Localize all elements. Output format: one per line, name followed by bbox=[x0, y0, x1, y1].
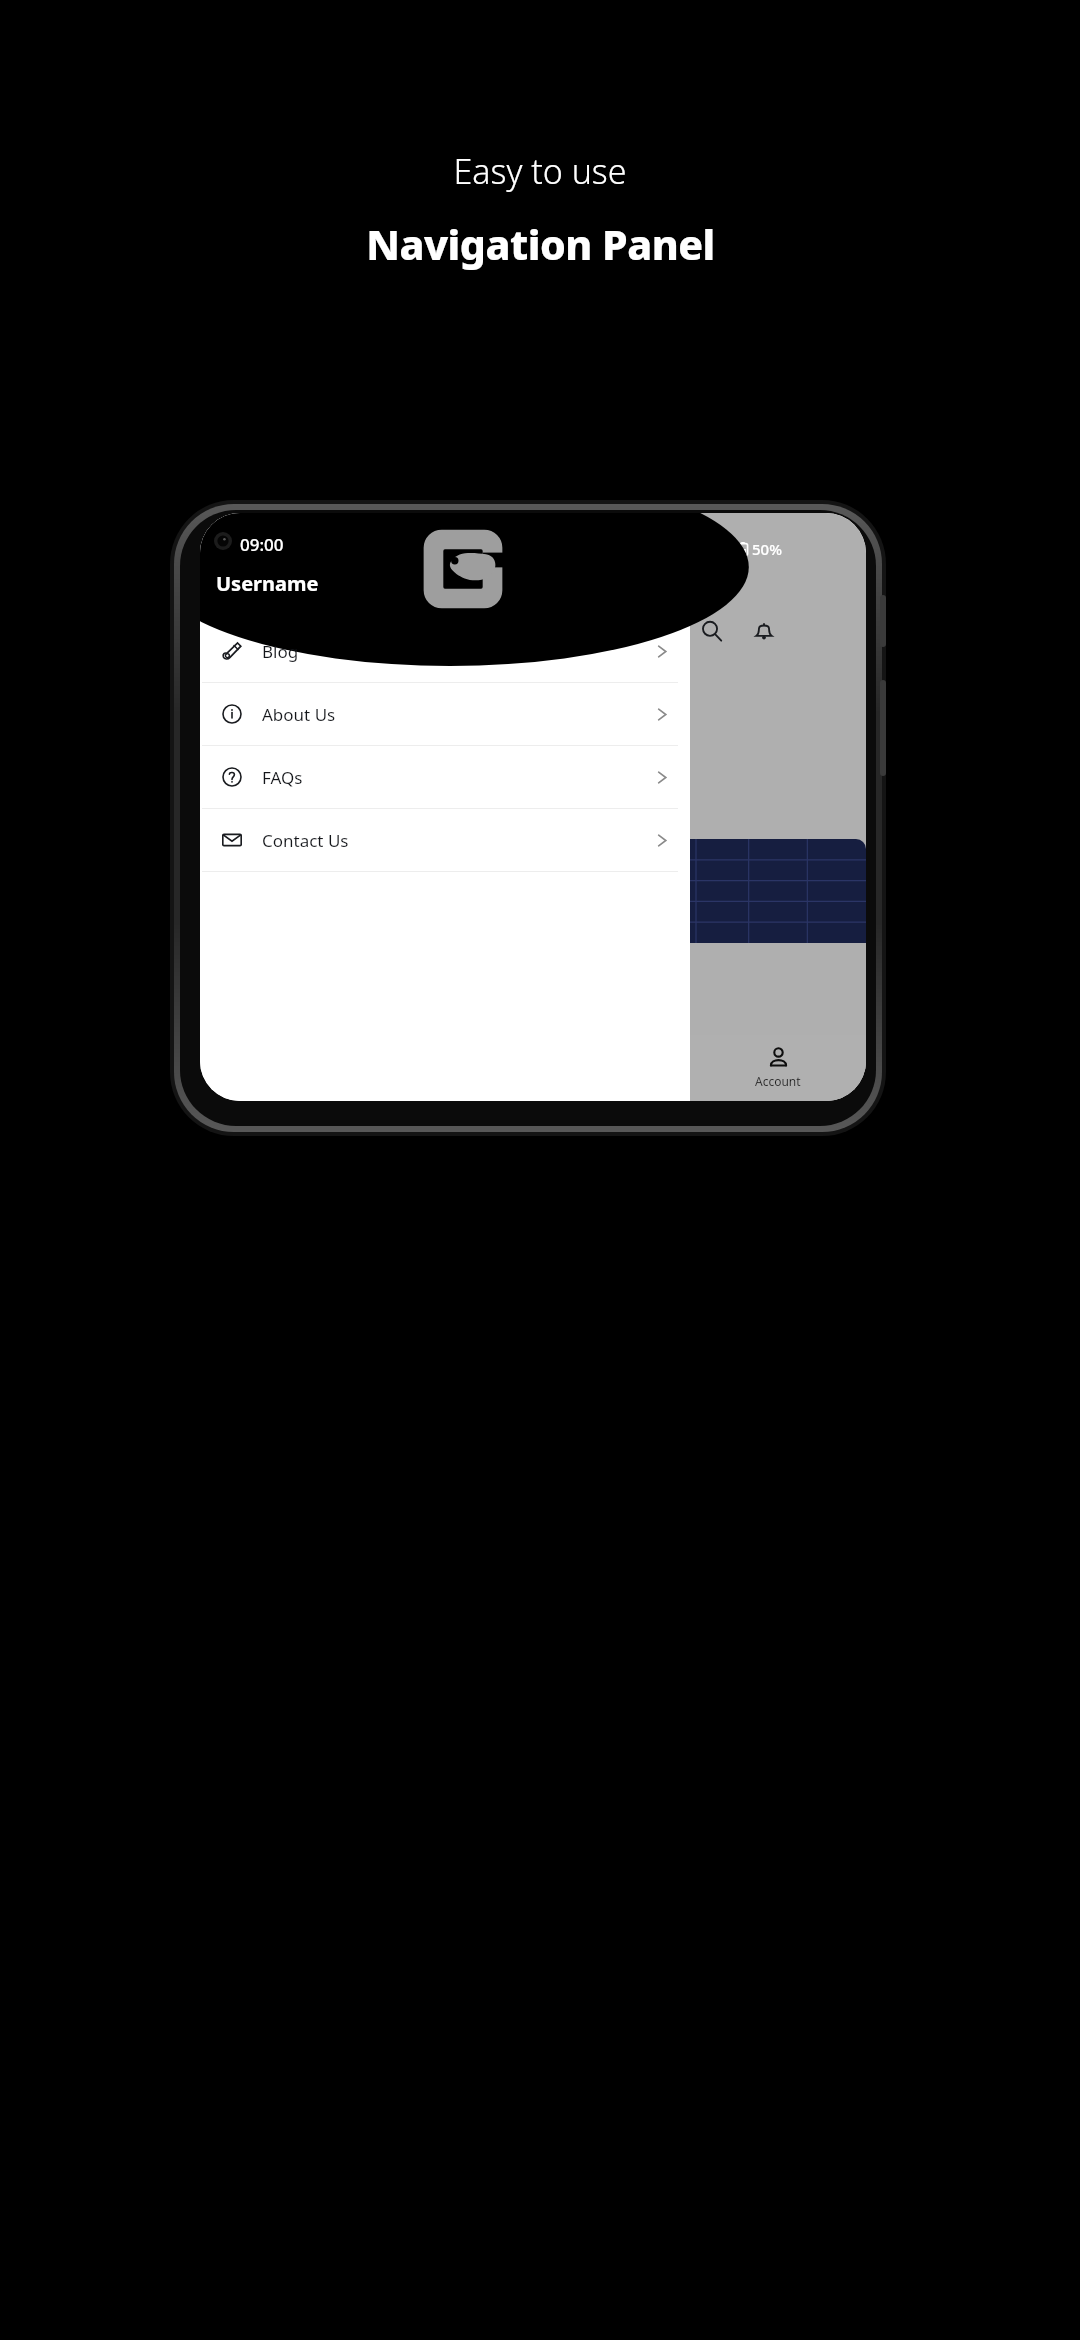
button[interactable]: Notifications bbox=[742, 609, 786, 653]
button[interactable]: FAQs bbox=[200, 746, 690, 809]
staticText: 50% bbox=[752, 539, 782, 559]
staticText: Username bbox=[216, 570, 319, 597]
button[interactable]: About Us bbox=[200, 683, 690, 746]
button[interactable]: Search bbox=[690, 609, 734, 653]
staticText: Navigation Panel bbox=[366, 216, 715, 272]
staticText: Easy to use bbox=[453, 148, 627, 194]
staticText: FAQs bbox=[262, 766, 303, 789]
button[interactable]: Contact Us bbox=[200, 809, 690, 872]
staticText: 09:00 bbox=[240, 533, 284, 556]
staticText: Account bbox=[755, 1073, 801, 1089]
staticText: About Us bbox=[262, 703, 336, 726]
staticText: Contact Us bbox=[262, 829, 349, 852]
button[interactable]: Blog bbox=[200, 620, 690, 683]
button[interactable]: Account bbox=[690, 1035, 866, 1101]
staticText: Blog bbox=[262, 640, 299, 663]
